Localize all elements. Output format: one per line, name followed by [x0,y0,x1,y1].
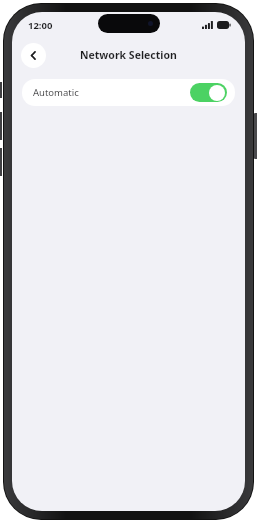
button[interactable]: Automatic network selection toggle [190,83,227,102]
staticText: Automatic [33,86,79,99]
staticText: 12:00 [28,19,53,32]
staticText: Network Selection [80,48,177,62]
button[interactable]: Automatic [22,79,235,106]
button[interactable]: Back [21,43,46,68]
